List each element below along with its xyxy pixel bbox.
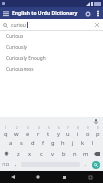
staticText: t bbox=[47, 130, 50, 137]
button[interactable]: c bbox=[36, 148, 47, 159]
button[interactable]: 6 bbox=[53, 126, 63, 137]
button[interactable]: Settings bbox=[82, 8, 93, 19]
button[interactable]: Curiously bbox=[0, 42, 103, 53]
button[interactable]: h bbox=[58, 137, 68, 148]
staticText: y bbox=[57, 130, 60, 137]
staticText: 7 bbox=[67, 126, 69, 130]
staticText: Curiously Enough bbox=[6, 55, 46, 62]
staticText: b bbox=[62, 150, 66, 158]
button[interactable]: Search bbox=[92, 161, 100, 169]
staticText: 5 bbox=[48, 126, 50, 130]
button[interactable]: f bbox=[38, 137, 48, 148]
staticText: v bbox=[51, 150, 54, 158]
staticText: 0 bbox=[97, 126, 99, 130]
staticText: m bbox=[83, 150, 89, 158]
staticText: Curious bbox=[6, 33, 24, 40]
button[interactable]: Back bbox=[0, 171, 25, 183]
button[interactable]: s bbox=[16, 137, 27, 148]
button[interactable]: d bbox=[27, 137, 38, 148]
staticText: q bbox=[4, 130, 8, 137]
staticText: 8 bbox=[77, 126, 79, 130]
button[interactable]: Curious bbox=[0, 31, 103, 42]
button[interactable]: k bbox=[78, 137, 88, 148]
button[interactable]: a bbox=[5, 137, 16, 148]
staticText: f bbox=[42, 139, 44, 147]
staticText: o bbox=[86, 130, 90, 137]
staticText: k bbox=[81, 139, 85, 147]
button[interactable]: Backspace bbox=[91, 148, 103, 159]
staticText: . bbox=[85, 161, 87, 168]
staticText: r bbox=[37, 130, 40, 137]
button[interactable]: 4 bbox=[33, 126, 43, 137]
button[interactable]: ?123 bbox=[0, 159, 12, 170]
staticText: g bbox=[51, 139, 55, 147]
button[interactable]: Shift bbox=[0, 148, 12, 159]
staticText: 3 bbox=[27, 126, 29, 130]
button[interactable]: m bbox=[80, 148, 91, 159]
button[interactable]: More options bbox=[93, 9, 102, 18]
button[interactable]: z bbox=[12, 148, 24, 159]
staticText: w bbox=[14, 130, 19, 137]
button[interactable]: b bbox=[58, 148, 69, 159]
button[interactable]: l bbox=[88, 137, 98, 148]
staticText: i bbox=[77, 130, 79, 137]
staticText: a bbox=[9, 139, 13, 147]
button[interactable]: curiou bbox=[0, 19, 103, 31]
button[interactable]: 7 bbox=[63, 126, 73, 137]
button[interactable]: Curiously Enough bbox=[0, 53, 103, 64]
staticText: u bbox=[66, 130, 70, 137]
button[interactable]: x bbox=[24, 148, 36, 159]
staticText: Curiously bbox=[6, 44, 28, 51]
button[interactable]: 3 bbox=[22, 126, 33, 137]
staticText: 1 bbox=[5, 126, 7, 130]
button[interactable]: Clear search bbox=[93, 21, 101, 29]
staticText: c bbox=[40, 150, 43, 158]
button[interactable]: Recent apps bbox=[51, 171, 77, 183]
staticText: e bbox=[26, 130, 30, 137]
button[interactable]: . bbox=[82, 159, 89, 170]
button[interactable]: 8 bbox=[73, 126, 83, 137]
staticText: 9 bbox=[87, 126, 89, 130]
button[interactable]: g bbox=[48, 137, 58, 148]
button[interactable]: Screenshot bbox=[77, 171, 103, 183]
button[interactable]: j bbox=[68, 137, 78, 148]
staticText: Curiousness bbox=[6, 66, 34, 73]
staticText: , bbox=[15, 161, 17, 168]
button[interactable]: Curiousness bbox=[0, 64, 103, 75]
staticText: x bbox=[28, 150, 32, 158]
button[interactable]: , bbox=[12, 159, 19, 170]
button[interactable]: Home bbox=[25, 171, 51, 183]
staticText: n bbox=[73, 150, 77, 158]
staticText: h bbox=[61, 139, 65, 147]
button[interactable]: n bbox=[69, 148, 80, 159]
staticText: d bbox=[31, 139, 35, 147]
staticText: 4 bbox=[38, 126, 40, 130]
staticText: s bbox=[20, 139, 23, 147]
button[interactable]: v bbox=[47, 148, 58, 159]
staticText: 6 bbox=[58, 126, 60, 130]
button[interactable]: 9 bbox=[83, 126, 93, 137]
staticText: English to Urdu Dictionary bbox=[12, 10, 82, 17]
button[interactable]: 0 bbox=[93, 126, 103, 137]
button[interactable]: Voice input bbox=[89, 117, 103, 126]
staticText: ?123 bbox=[2, 162, 10, 167]
staticText: j bbox=[72, 139, 74, 147]
staticText: z bbox=[17, 150, 20, 158]
staticText: l bbox=[92, 139, 94, 147]
button[interactable]: 5 bbox=[43, 126, 53, 137]
button[interactable]: 2 bbox=[11, 126, 22, 137]
button[interactable]: Open navigation drawer bbox=[0, 7, 12, 19]
button[interactable]: 1 bbox=[0, 126, 11, 137]
staticText: curiou bbox=[11, 22, 26, 29]
staticText: p bbox=[96, 130, 100, 137]
staticText: 2 bbox=[16, 126, 18, 130]
